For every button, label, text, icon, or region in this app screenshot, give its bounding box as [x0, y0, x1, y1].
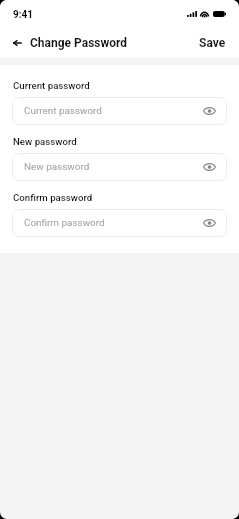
button[interactable]: Confirm password — [12, 209, 227, 237]
staticText: Current password — [24, 105, 102, 117]
button[interactable]: Save — [186, 29, 239, 57]
button[interactable]: Toggle password visibility — [201, 103, 218, 120]
staticText: Current password — [13, 80, 90, 91]
button[interactable]: Toggle password visibility — [201, 159, 218, 176]
staticText: New password — [24, 161, 90, 173]
staticText: New password — [13, 136, 77, 147]
button[interactable]: New password — [12, 153, 227, 181]
staticText: Save — [199, 36, 226, 50]
staticText: Confirm password — [13, 192, 93, 203]
button[interactable]: Current password — [12, 97, 227, 125]
staticText: Confirm password — [24, 217, 105, 229]
button[interactable]: Toggle password visibility — [201, 215, 218, 232]
staticText: 9:41 — [13, 9, 34, 21]
staticText: Change Password — [30, 36, 128, 50]
button[interactable]: Back — [8, 34, 26, 52]
